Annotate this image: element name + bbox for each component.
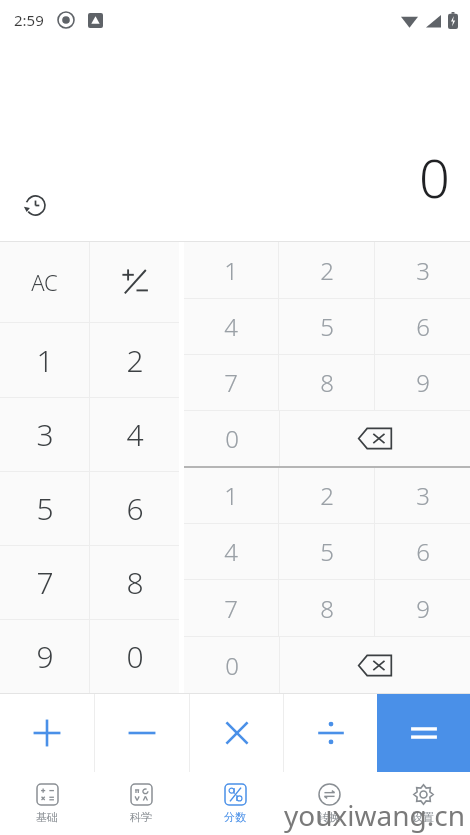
staticText: 8 [320,366,334,399]
button[interactable]: 1 [184,468,278,523]
button[interactable]: 2 [279,242,374,298]
button[interactable]: 9 [375,355,470,410]
button[interactable]: History [16,186,54,224]
button[interactable]: 8 [279,355,374,410]
button[interactable]: 9 [0,620,89,693]
staticText: 4 [224,535,238,568]
staticText: 5 [36,488,54,529]
button[interactable]: 0 [184,411,279,466]
staticText: 8 [126,562,144,603]
button[interactable]: 0 [90,620,179,693]
button[interactable]: 分数 [188,772,282,835]
button[interactable]: 9 [375,580,470,636]
button[interactable]: 0 [184,637,279,693]
staticText: 9 [416,366,430,399]
staticText: 基础 [36,810,58,824]
staticText: 6 [416,310,430,343]
staticText: 科学 [130,810,152,824]
staticText: 9 [36,636,54,677]
staticText: 0 [419,140,450,214]
staticText: 9 [416,592,430,625]
button[interactable]: Operator [284,694,377,772]
button[interactable]: Backspace [280,637,470,693]
staticText: 1 [224,479,238,512]
staticText: 5 [320,535,334,568]
button[interactable]: 8 [279,580,374,636]
staticText: 设置 [412,810,434,824]
staticText: 转换 [318,810,340,824]
button[interactable]: 2 [279,468,374,523]
staticText: 8 [320,592,334,625]
button[interactable]: Plus minus [90,242,179,322]
staticText: 2 [126,340,144,381]
staticText: 7 [224,366,238,399]
button[interactable]: 5 [0,472,89,545]
staticText: 6 [126,488,144,529]
staticText: 3 [416,479,430,512]
staticText: AC [31,267,58,297]
button[interactable]: 转换 [282,772,376,835]
staticText: 0 [126,636,144,677]
button[interactable]: 4 [90,398,179,471]
staticText: 0 [225,649,239,682]
button[interactable]: Backspace [280,411,470,466]
staticText: 2 [320,479,334,512]
button[interactable]: 4 [184,524,278,579]
staticText: 0 [225,422,239,455]
staticText: 3 [416,254,430,287]
button[interactable]: 6 [375,524,470,579]
button[interactable]: Equals [377,694,470,772]
button[interactable]: Operator [0,694,94,772]
button[interactable]: 7 [0,546,89,619]
staticText: 4 [224,310,238,343]
staticText: 7 [224,592,238,625]
button[interactable]: 6 [90,472,179,545]
button[interactable]: 7 [184,355,278,410]
button[interactable]: 科学 [94,772,188,835]
button[interactable]: 4 [184,299,278,354]
staticText: 分数 [224,810,246,824]
button[interactable]: 3 [375,468,470,523]
button[interactable]: 5 [279,524,374,579]
staticText: 5 [320,310,334,343]
button[interactable]: 3 [375,242,470,298]
button[interactable]: 3 [0,398,89,471]
button[interactable]: 6 [375,299,470,354]
button[interactable]: 7 [184,580,278,636]
button[interactable]: AC [0,242,89,322]
button[interactable]: 2 [90,323,179,397]
button[interactable]: Operator [95,694,189,772]
button[interactable]: Operator [190,694,283,772]
staticText: 7 [36,562,54,603]
staticText: 2 [320,254,334,287]
staticText: 6 [416,535,430,568]
button[interactable]: 1 [0,323,89,397]
staticText: 4 [126,414,144,455]
staticText: 1 [224,254,238,287]
button[interactable]: 设置 [376,772,470,835]
staticText: youxiwang.cn [284,796,466,834]
staticText: 3 [36,414,54,455]
staticText: 1 [36,340,54,381]
staticText: 2:59 [14,10,44,30]
button[interactable]: 8 [90,546,179,619]
button[interactable]: 1 [184,242,278,298]
button[interactable]: 基础 [0,772,94,835]
button[interactable]: 5 [279,299,374,354]
